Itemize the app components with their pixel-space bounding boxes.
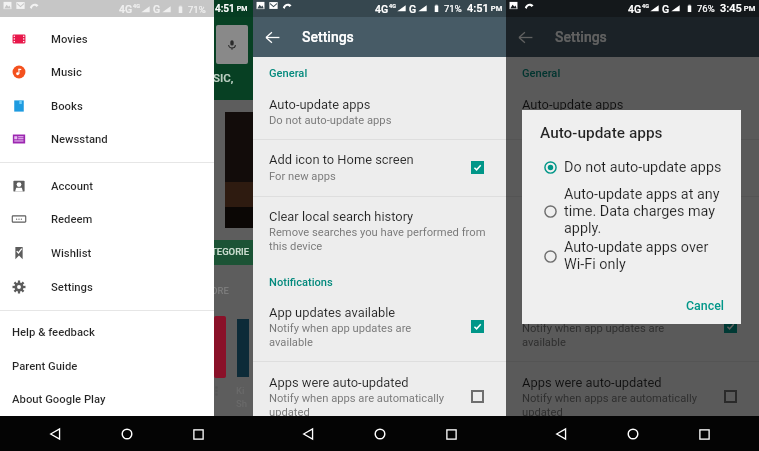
button[interactable]: Apps were auto-updated: [506, 373, 759, 391]
button[interactable]: Music: [0, 55, 214, 89]
staticText: Clear local search history: [522, 209, 667, 224]
staticText: 4:51: [215, 3, 235, 15]
button[interactable]: Toggle: [719, 315, 741, 337]
staticText: PM: [489, 4, 503, 13]
button[interactable]: Home: [616, 417, 650, 451]
staticText: App updates available: [269, 305, 396, 320]
button[interactable]: Recents: [181, 417, 215, 451]
button[interactable]: Home: [363, 417, 397, 451]
button[interactable]: Parent Guide: [0, 349, 214, 383]
button[interactable]: Do not auto-update apps: [522, 156, 741, 178]
staticText: 4:51: [720, 2, 742, 15]
button[interactable]: Recents: [687, 417, 721, 451]
button[interactable]: Toggle: [466, 385, 488, 407]
staticText: Apps were auto-updated: [522, 375, 662, 390]
staticText: General: [269, 67, 308, 80]
button[interactable]: Back: [291, 417, 325, 451]
staticText: Remove searches you have performed from …: [269, 226, 491, 253]
staticText: Add icon to Home screen: [522, 152, 667, 167]
button[interactable]: Toggle: [466, 315, 488, 337]
staticText: 4:51: [467, 2, 489, 15]
button[interactable]: Back: [544, 417, 578, 451]
button[interactable]: Toggle: [719, 385, 741, 407]
button[interactable]: Account: [0, 169, 214, 203]
button[interactable]: Auto-update apps over Wi-Fi only: [522, 237, 741, 275]
staticText: Auto-update apps: [522, 97, 624, 112]
button[interactable]: Movies: [0, 22, 214, 56]
button[interactable]: Books: [0, 89, 214, 123]
staticText: PM: [742, 4, 756, 13]
button[interactable]: Toggle: [719, 156, 741, 178]
staticText: 4G: [628, 3, 642, 15]
staticText: PM: [235, 5, 248, 13]
button[interactable]: Apps were auto-updated: [253, 373, 506, 391]
staticText: Settings: [555, 29, 607, 45]
button[interactable]: Add icon to Home screen: [253, 150, 506, 168]
staticText: G: [662, 3, 670, 15]
button[interactable]: Recents: [687, 417, 721, 451]
staticText: Do not auto-update apps: [269, 114, 392, 127]
staticText: Wishlist: [51, 247, 92, 260]
staticText: Account: [51, 180, 94, 193]
button[interactable]: Back: [38, 417, 72, 451]
staticText: Ki: [236, 385, 245, 396]
button[interactable]: Help & feedback: [0, 315, 214, 349]
button[interactable]: Newsstand: [0, 122, 214, 156]
staticText: For new apps: [269, 170, 336, 183]
staticText: Auto-update apps at any time. Data charg…: [564, 186, 731, 237]
button[interactable]: Auto-update apps: [253, 95, 506, 113]
staticText: Notify when app updates are available: [269, 322, 419, 349]
button[interactable]: Auto-update apps at any time. Data charg…: [522, 184, 741, 238]
button[interactable]: Cancel: [680, 292, 731, 319]
button[interactable]: About Google Play: [0, 382, 214, 416]
staticText: 76%: [697, 3, 715, 14]
button[interactable]: Settings: [0, 270, 214, 304]
staticText: Auto-update apps: [269, 97, 371, 112]
staticText: Redeem: [51, 213, 93, 226]
staticText: 4G: [389, 3, 396, 9]
button[interactable]: Back: [512, 24, 538, 50]
button[interactable]: Home: [616, 417, 650, 451]
button[interactable]: Toggle: [466, 156, 488, 178]
button[interactable]: App updates available: [253, 303, 506, 321]
button[interactable]: Clear local search history: [253, 207, 506, 225]
staticText: Help & feedback: [12, 326, 95, 339]
staticText: Auto-update apps over Wi-Fi only: [564, 239, 731, 273]
button[interactable]: Add icon to Home screen: [506, 150, 759, 168]
staticText: Auto-update apps: [540, 124, 663, 142]
staticText: General: [522, 67, 561, 80]
staticText: For new apps: [522, 170, 589, 183]
staticText: Parent Guide: [12, 360, 78, 373]
button[interactable]: Redeem: [0, 202, 214, 236]
staticText: 4G: [642, 3, 649, 9]
button[interactable]: Auto-update apps: [506, 95, 759, 113]
staticText: Add icon to Home screen: [269, 152, 414, 167]
staticText: 3:45: [720, 2, 742, 15]
staticText: Settings: [302, 29, 354, 45]
staticText: Notify when apps are automatically updat…: [269, 392, 451, 419]
button[interactable]: Back: [259, 24, 285, 50]
button[interactable]: Recents: [434, 417, 468, 451]
staticText: 71%: [188, 4, 206, 15]
staticText: Do not auto-update apps: [564, 159, 722, 176]
staticText: TEGORIE: [211, 246, 250, 257]
staticText: G: [153, 3, 161, 15]
staticText: G: [662, 3, 670, 15]
staticText: Remove searches you have performed from …: [522, 226, 744, 253]
staticText: About Google Play: [12, 393, 106, 406]
staticText: Notify when app updates are available: [522, 322, 672, 349]
staticText: Clear local search history: [269, 209, 414, 224]
staticText: 4G: [133, 3, 140, 9]
staticText: Notifications: [269, 276, 333, 289]
button[interactable]: Wishlist: [0, 236, 214, 270]
button[interactable]: Clear local search history: [506, 207, 759, 225]
staticText: 4G: [628, 3, 642, 15]
staticText: 4G: [642, 3, 649, 9]
button[interactable]: Home: [110, 417, 144, 451]
staticText: Settings: [51, 281, 93, 294]
button[interactable]: App updates available: [506, 303, 759, 321]
button[interactable]: Back: [544, 417, 578, 451]
